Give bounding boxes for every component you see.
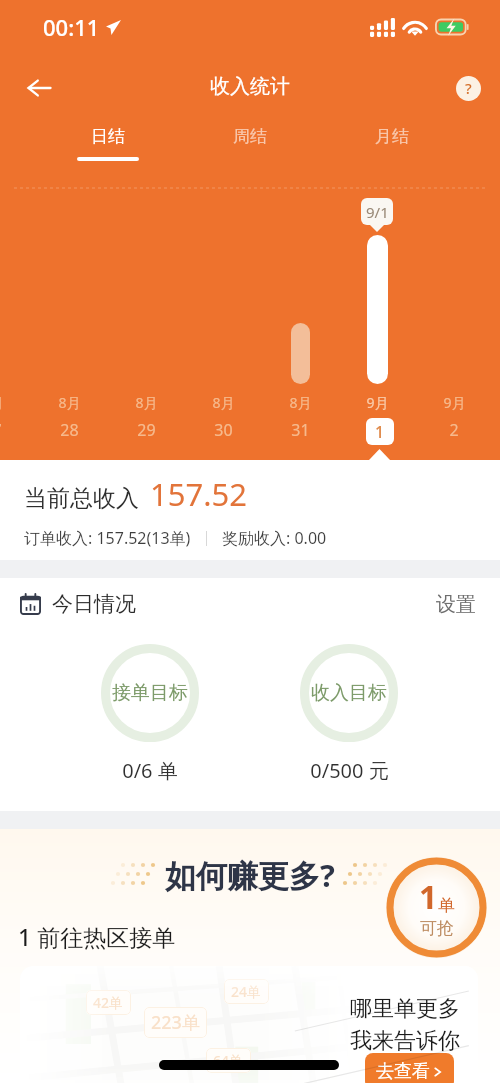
staticText: 收入目标: [311, 681, 387, 705]
staticText: 订单收入: 157.52(13单): [24, 527, 191, 549]
staticText: 157.52: [150, 473, 247, 515]
staticText: 9/1: [366, 202, 389, 222]
staticText: 接单目标: [112, 681, 188, 705]
staticText: 1 前往热区接单: [18, 921, 176, 952]
staticText: 29: [137, 419, 156, 441]
button[interactable]: 42单: [20, 966, 478, 1083]
button[interactable]: 设置: [432, 588, 480, 621]
staticText: 8月: [0, 393, 4, 412]
staticText: 今日情况: [52, 591, 136, 617]
button[interactable]: 月结: [321, 116, 463, 176]
staticText: 64单: [213, 1051, 244, 1070]
staticText: 24单: [231, 982, 262, 1001]
button[interactable]: 1: [386, 857, 487, 958]
staticText: 我来告诉你: [350, 1027, 460, 1055]
staticText: 可抢: [420, 918, 454, 939]
staticText: 哪里单更多: [350, 995, 460, 1023]
staticText: 单: [438, 895, 455, 916]
button[interactable]: 日结: [37, 116, 179, 176]
staticText: 月结: [375, 126, 409, 147]
staticText: 奖励收入: 0.00: [222, 527, 327, 549]
staticText: 去查看: [376, 1060, 430, 1083]
staticText: 31: [291, 419, 310, 441]
button[interactable]: 去查看: [365, 1053, 454, 1083]
button[interactable]: 周结: [179, 116, 321, 176]
staticText: 0/6 单: [122, 757, 178, 784]
staticText: 8月: [212, 393, 235, 412]
staticText: 9月: [443, 393, 466, 412]
staticText: 8月: [58, 393, 81, 412]
staticText: 9月: [366, 393, 389, 412]
staticText: 42单: [93, 993, 124, 1012]
staticText: 0/500 元: [310, 757, 389, 784]
staticText: 28: [60, 419, 79, 441]
staticText: 8月: [289, 393, 312, 412]
staticText: 2: [449, 419, 459, 441]
staticText: 27: [0, 419, 2, 441]
staticText: 收入统计: [210, 74, 290, 99]
staticText: 1: [419, 875, 438, 919]
staticText: 如何赚更多?: [165, 854, 335, 896]
staticText: 00:11: [43, 12, 100, 42]
staticText: 设置: [436, 592, 476, 617]
staticText: ?: [465, 78, 472, 98]
staticText: 1: [375, 421, 385, 443]
staticText: 当前总收入: [24, 484, 139, 513]
staticText: 30: [214, 419, 233, 441]
staticText: 周结: [233, 126, 267, 147]
staticText: 223单: [151, 1010, 200, 1035]
staticText: 8月: [135, 393, 158, 412]
staticText: 日结: [91, 126, 125, 147]
button[interactable]: Back: [17, 66, 61, 110]
button[interactable]: Help: [456, 76, 481, 101]
